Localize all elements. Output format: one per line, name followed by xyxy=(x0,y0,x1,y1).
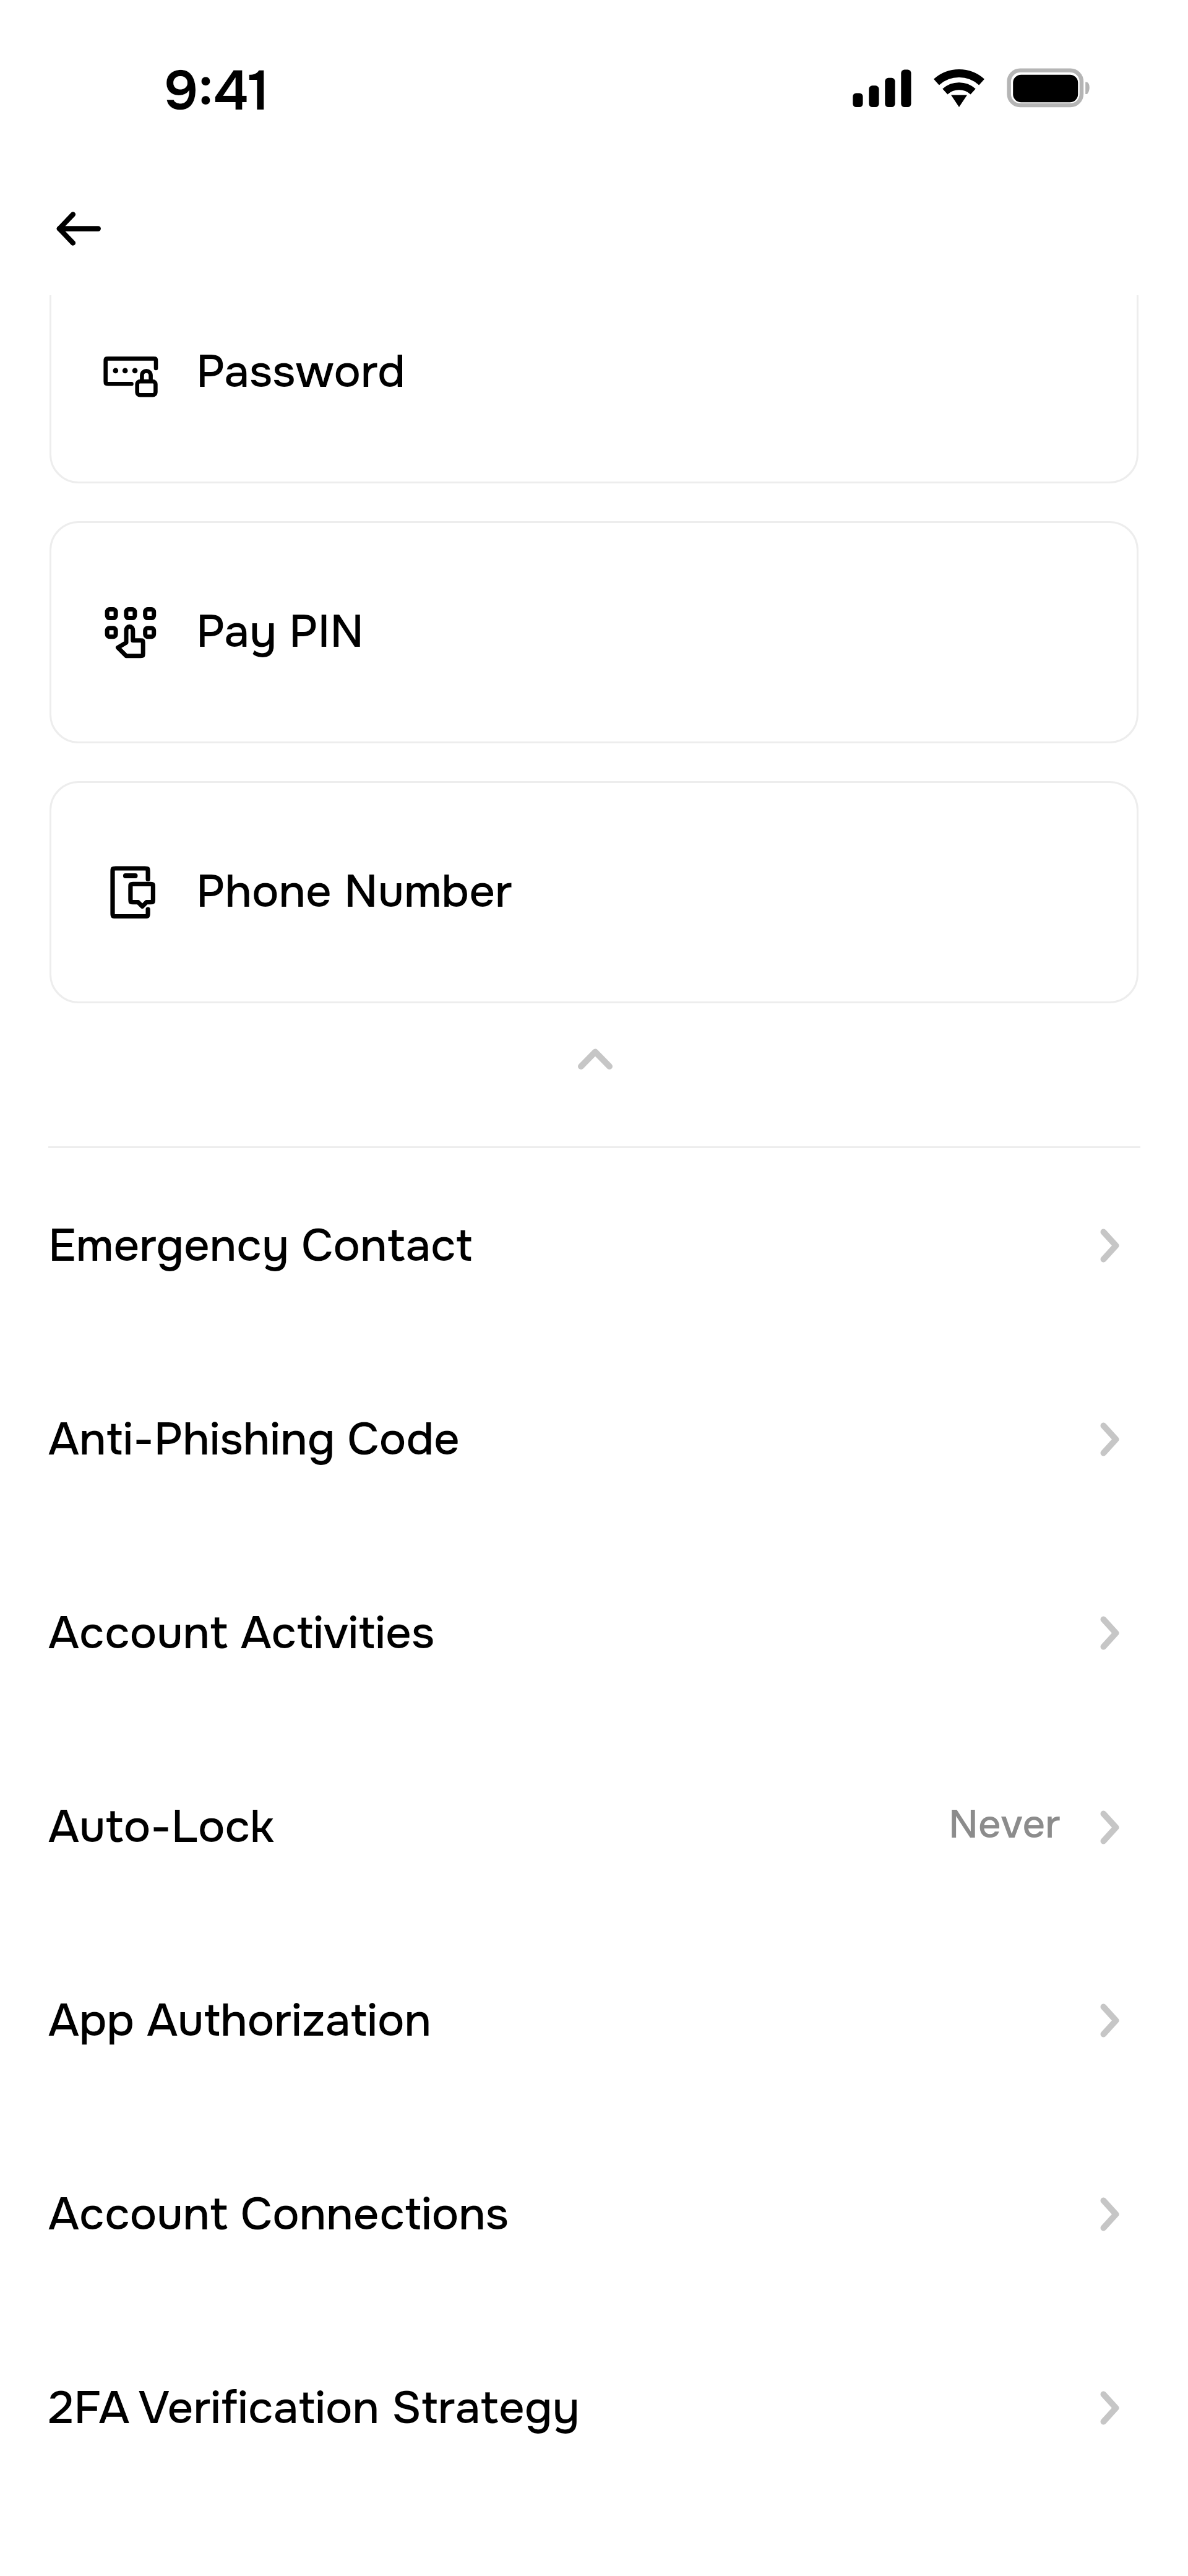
button[interactable]: Emergency Contact xyxy=(0,1149,1188,1342)
staticText: Anti-Phishing Code xyxy=(48,1411,460,1468)
staticText: Emergency Contact xyxy=(48,1217,473,1274)
staticText: 9:41 xyxy=(164,56,270,126)
staticText: 2FA Verification Strategy xyxy=(48,2379,580,2437)
button[interactable]: Back xyxy=(38,189,119,269)
button[interactable]: Anti-Phishing Code xyxy=(0,1342,1188,1536)
staticText: Never xyxy=(949,1799,1061,1850)
button[interactable]: 2FA Verification Strategy xyxy=(0,2311,1188,2505)
staticText: Account Connections xyxy=(48,2185,509,2243)
staticText: Password xyxy=(196,343,405,400)
button[interactable]: Collapse xyxy=(0,998,1188,1119)
button[interactable]: Pay PIN xyxy=(49,521,1138,743)
button[interactable]: Account Connections xyxy=(0,2117,1188,2311)
button[interactable]: Auto-Lock xyxy=(0,1730,1188,1924)
staticText: Phone Number xyxy=(196,863,512,920)
staticText: Pay PIN xyxy=(196,603,364,660)
staticText: App Authorization xyxy=(48,1992,431,2049)
staticText: Auto-Lock xyxy=(48,1798,274,1856)
button[interactable]: Account Activities xyxy=(0,1536,1188,1730)
staticText: Account Activities xyxy=(48,1604,435,1662)
button[interactable]: Password xyxy=(49,295,1138,483)
button[interactable]: App Authorization xyxy=(0,1924,1188,2117)
button[interactable]: Phone Number xyxy=(49,781,1138,1003)
